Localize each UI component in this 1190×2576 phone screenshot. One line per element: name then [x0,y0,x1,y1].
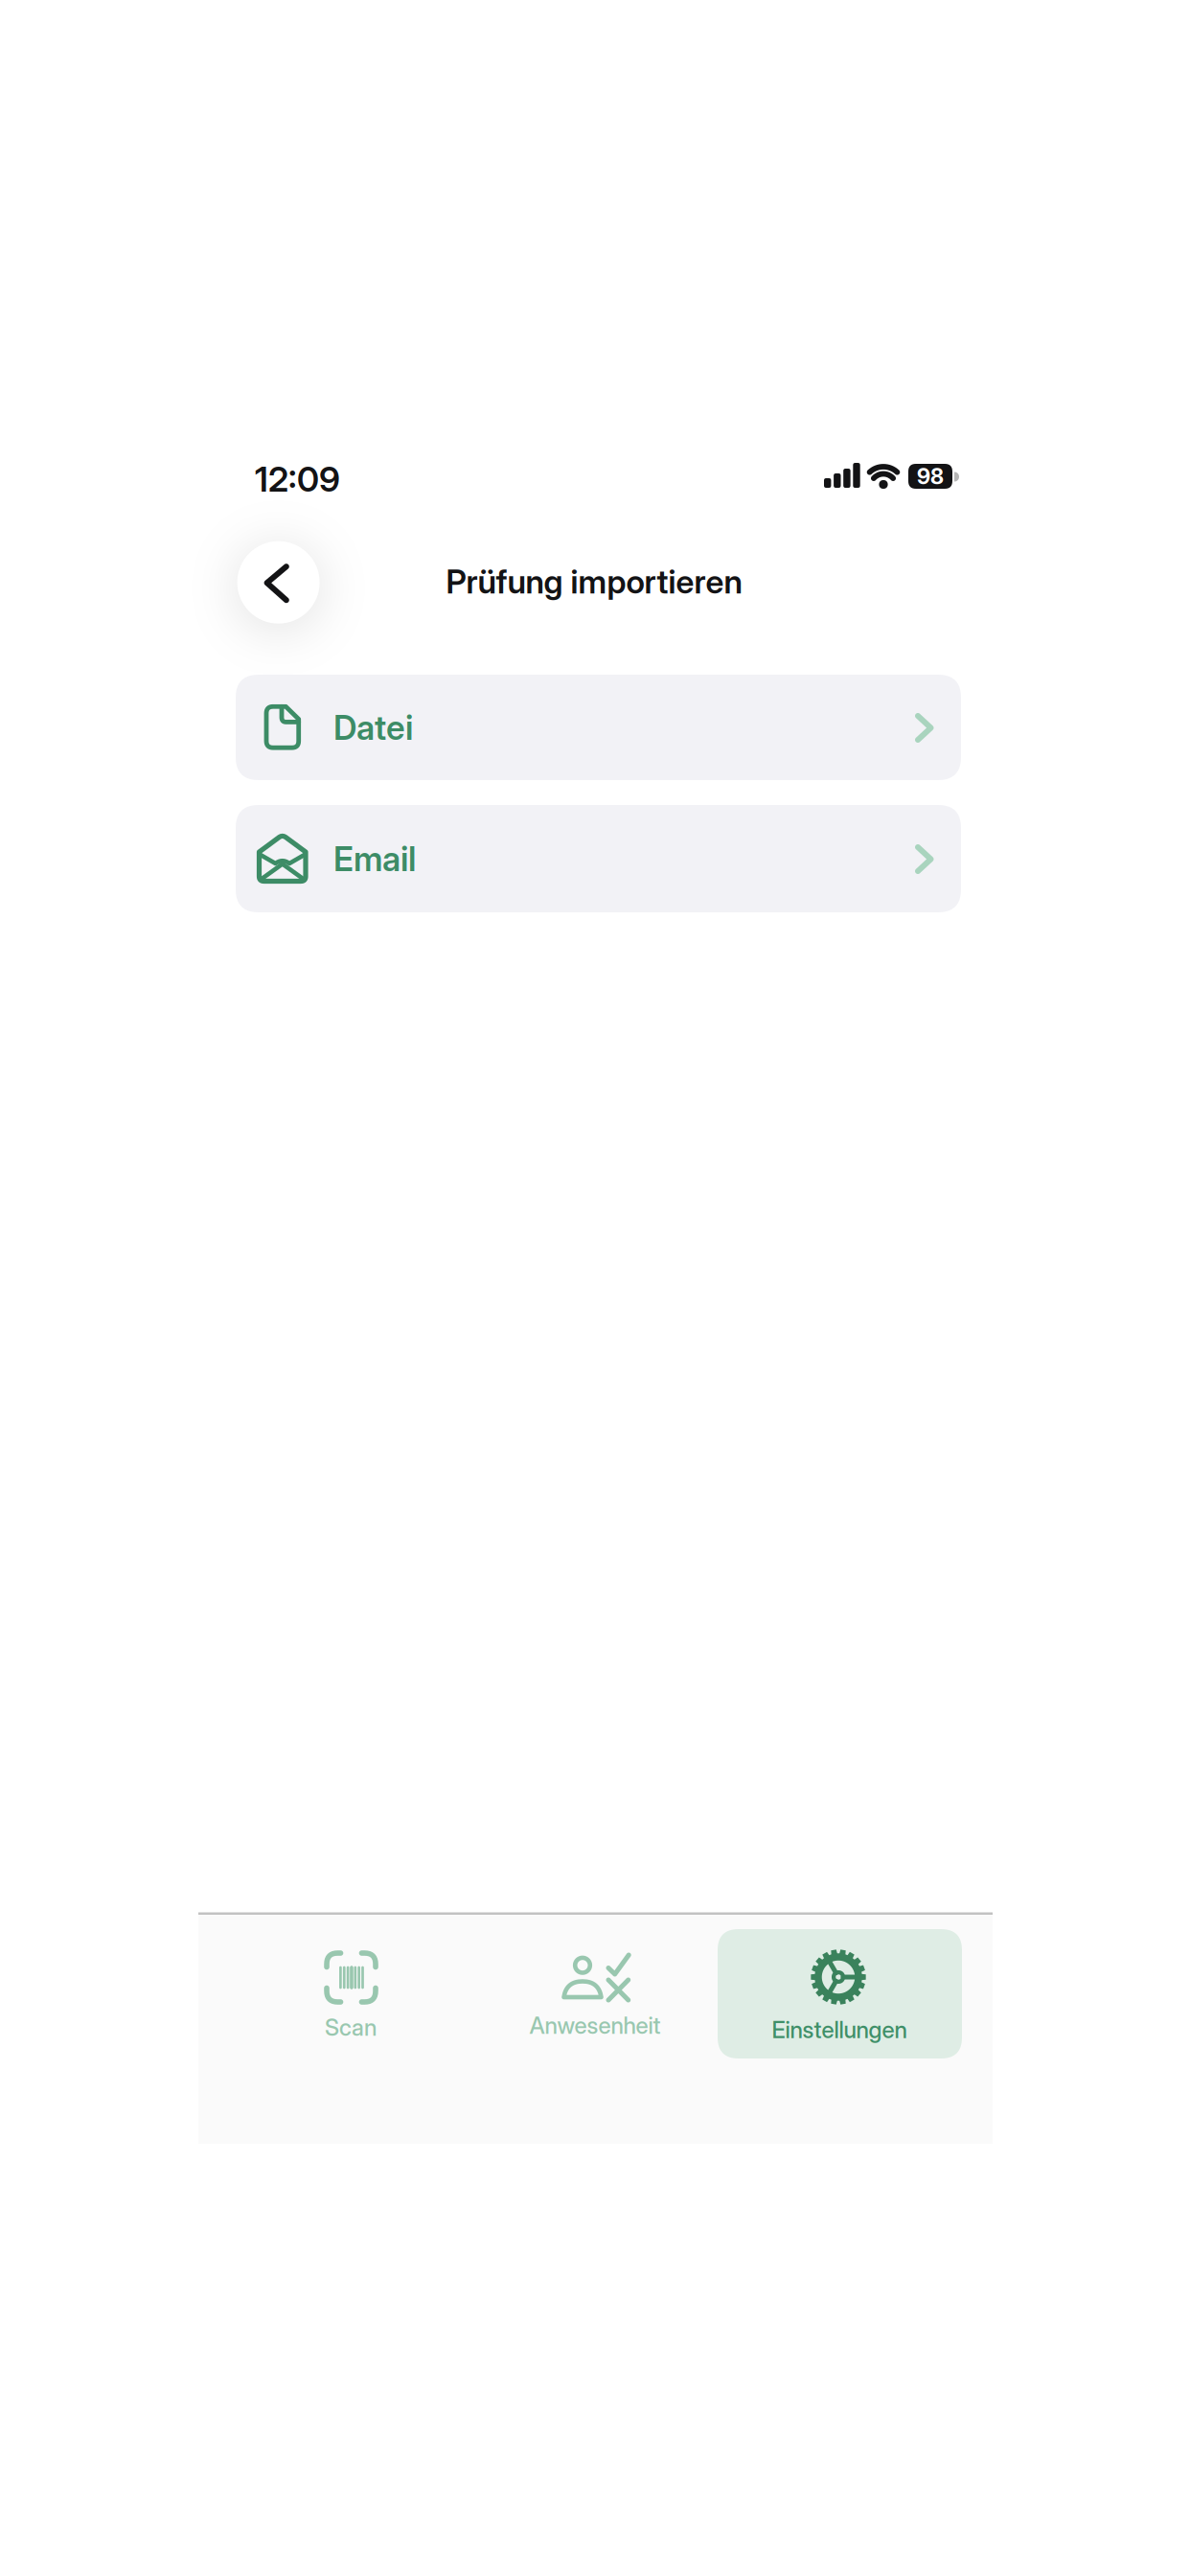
staticText: Datei [333,708,413,748]
staticText: Anwesenheit [529,2012,661,2039]
button[interactable]: Email [236,805,961,912]
button[interactable]: Back [237,541,320,624]
button[interactable]: Scan [279,1929,423,2044]
staticText: 98 [917,463,944,489]
button[interactable]: Einstellungen [718,1929,962,2058]
button[interactable]: Anwesenheit [514,1929,676,2044]
staticText: Email [333,839,416,879]
button[interactable]: Datei [236,675,961,780]
staticText: Prüfung importieren [446,562,742,601]
staticText: Einstellungen [772,2016,907,2044]
staticText: Scan [325,2013,377,2041]
staticText: 12:09 [255,458,340,500]
